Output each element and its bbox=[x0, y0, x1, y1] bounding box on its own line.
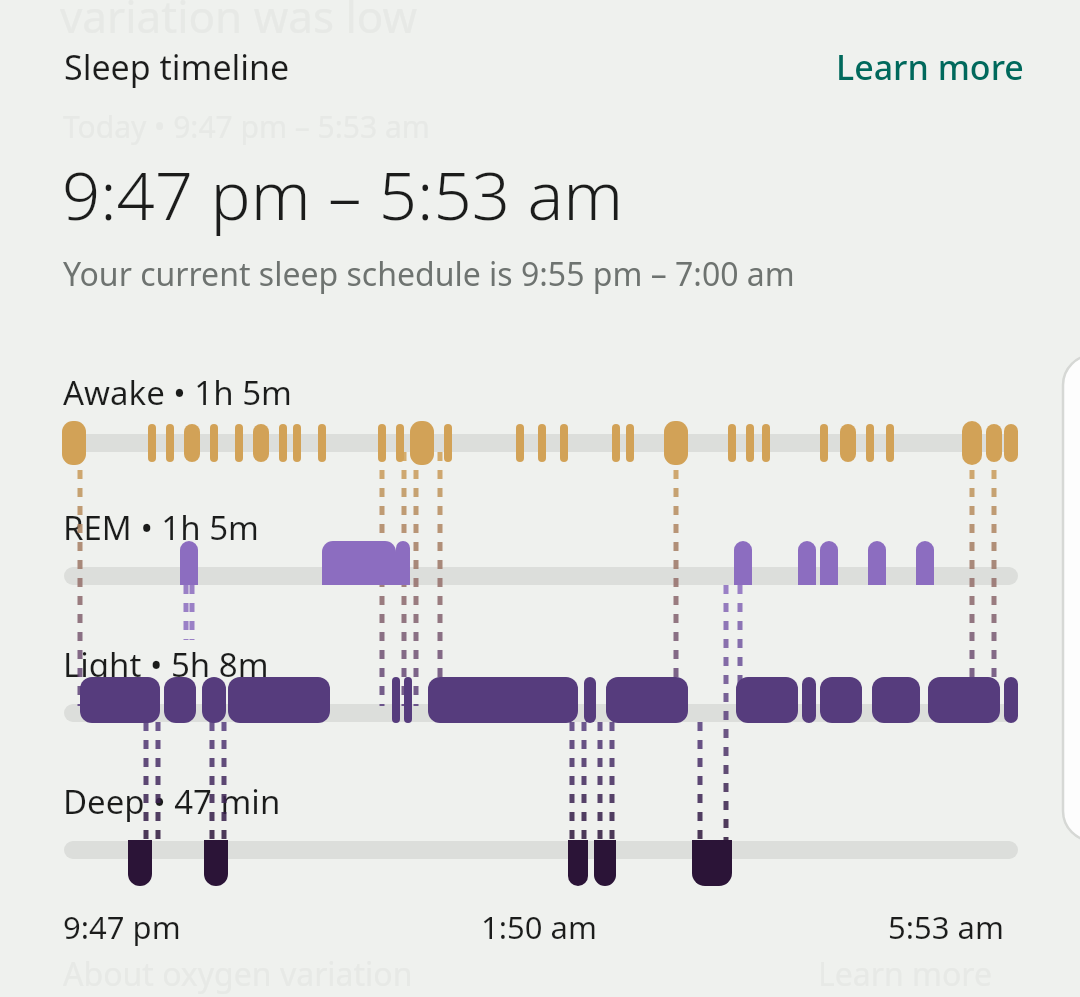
staticText: 9:47 pm – 5:53 am bbox=[62, 148, 624, 239]
staticText: 5:53 am bbox=[888, 906, 1004, 948]
staticText: Your current sleep schedule is 9:55 pm –… bbox=[63, 252, 795, 296]
staticText: Deep • 47 min bbox=[63, 779, 281, 824]
button[interactable]: Sleep stage timeline chart bbox=[0, 0, 1080, 997]
staticText: 1:50 am bbox=[481, 906, 597, 948]
staticText: Learn more bbox=[836, 44, 1024, 90]
staticText: variation was low bbox=[60, 0, 418, 46]
staticText: Awake • 1h 5m bbox=[63, 370, 292, 415]
staticText: REM • 1h 5m bbox=[63, 505, 259, 550]
staticText: Light • 5h 8m bbox=[63, 642, 269, 687]
staticText: Sleep timeline bbox=[64, 44, 290, 90]
staticText: 9:47 pm bbox=[63, 906, 181, 948]
button[interactable]: Learn more bbox=[836, 44, 1024, 90]
